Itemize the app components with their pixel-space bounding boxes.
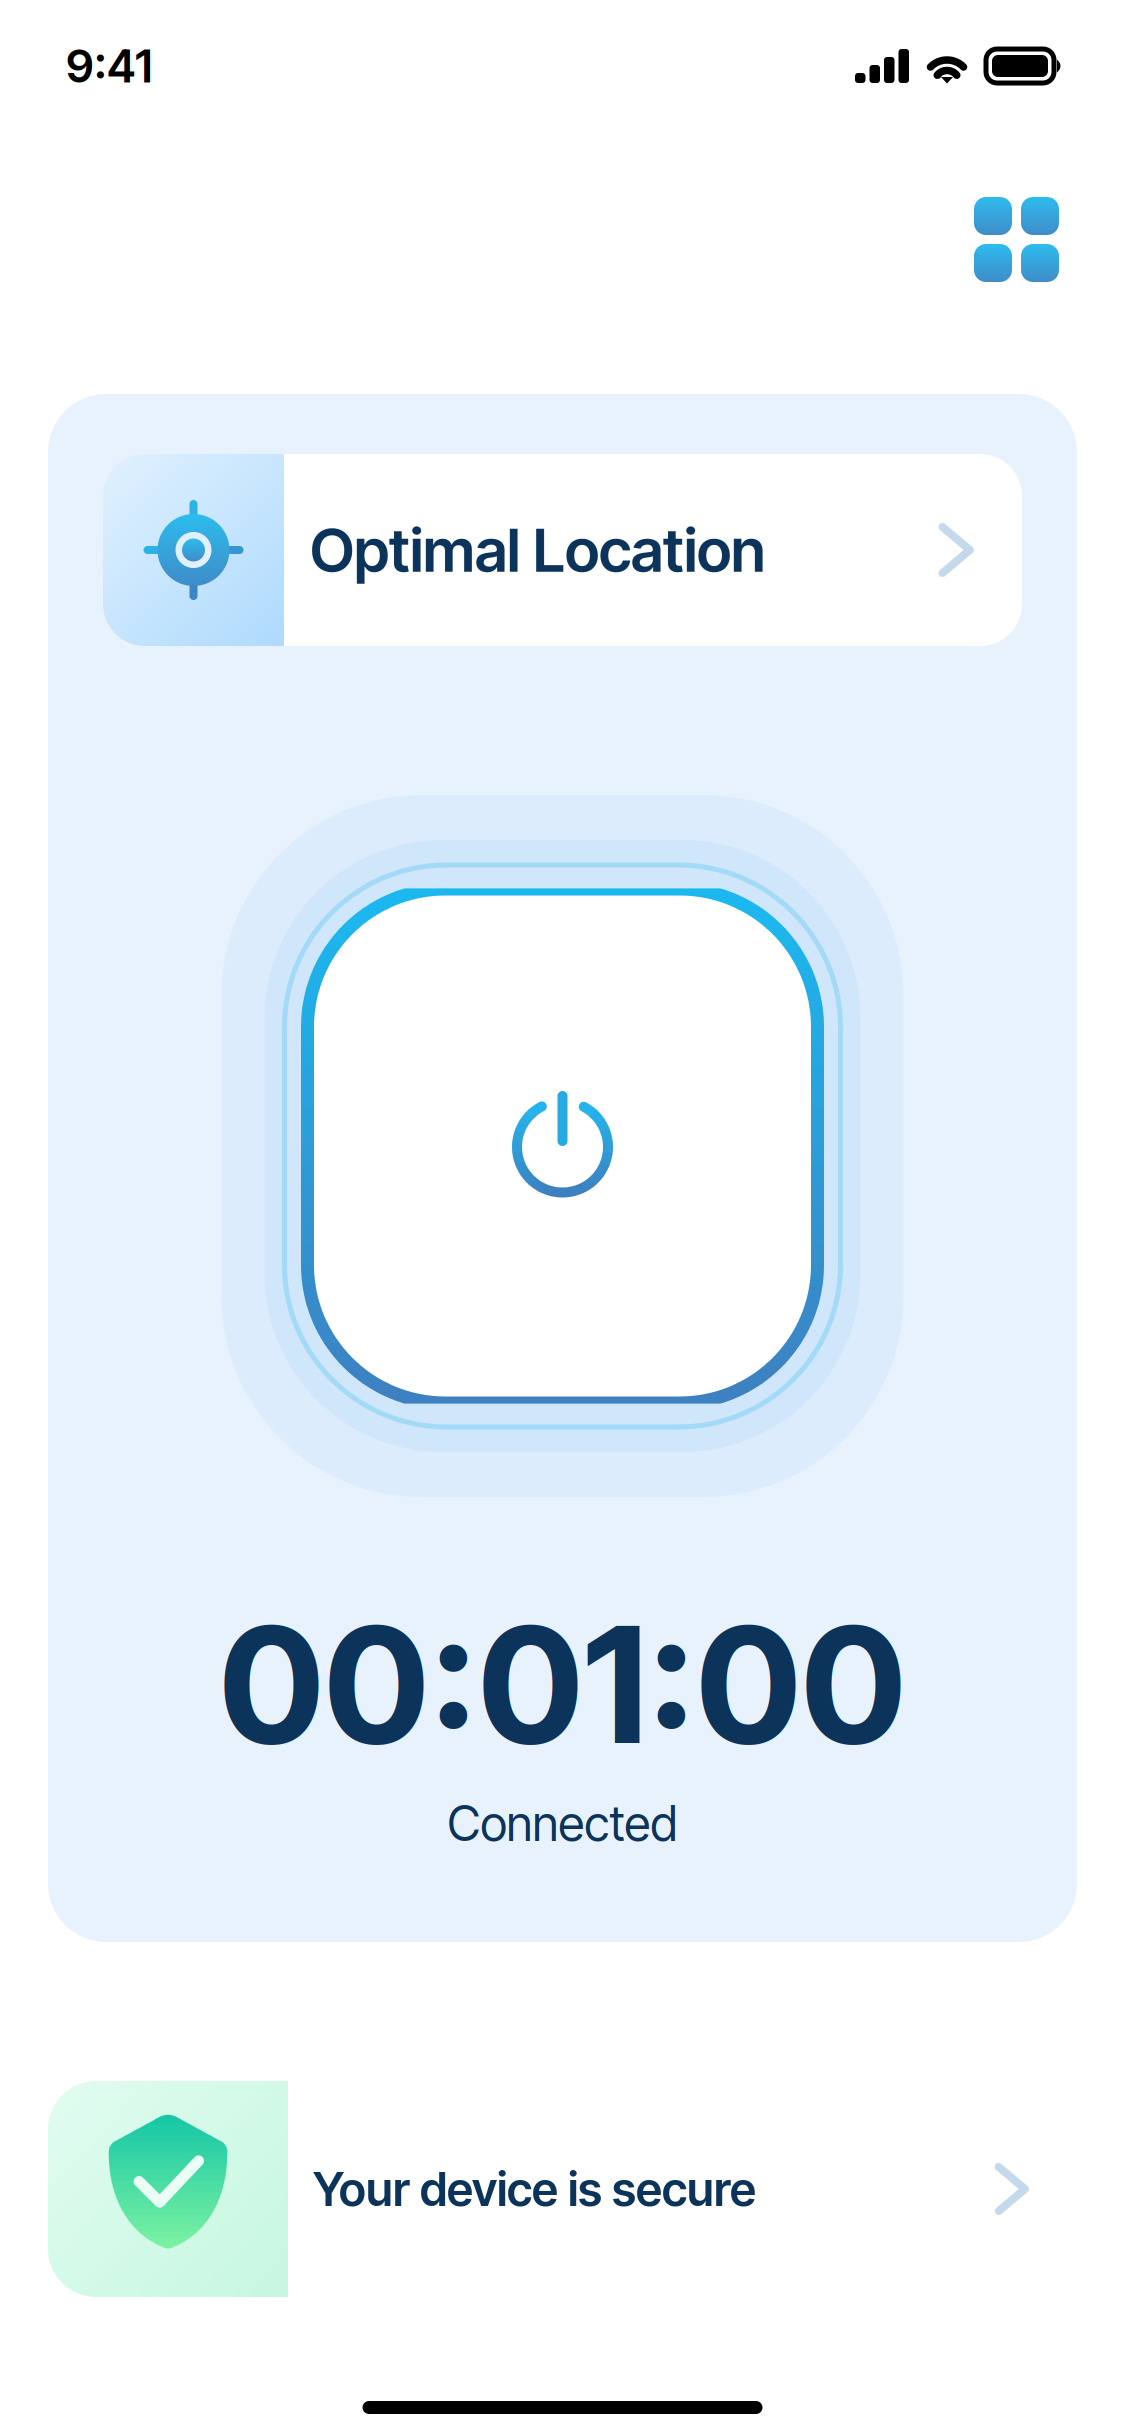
staticText: 00:01:00 — [219, 1588, 906, 1782]
button[interactable]: Your device is secure — [48, 2081, 1077, 2297]
staticText: Connected — [447, 1795, 677, 1853]
staticText: Optimal Location — [310, 514, 765, 586]
button[interactable]: Optimal Location — [103, 454, 1022, 646]
staticText: 9:41 — [66, 39, 152, 93]
staticText: Your device is secure — [313, 2161, 756, 2217]
button[interactable]: Servers — [956, 179, 1077, 300]
button[interactable]: Power — [221, 795, 903, 1497]
